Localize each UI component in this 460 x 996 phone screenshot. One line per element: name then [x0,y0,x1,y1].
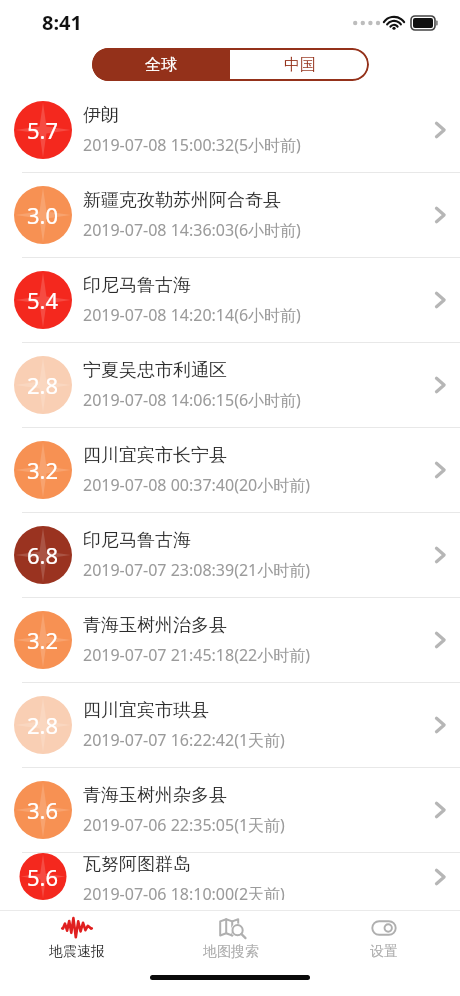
button[interactable]: 全球 [92,48,230,81]
staticText: 2.8 [27,370,59,400]
staticText: 青海玉树州杂多县 [83,784,227,807]
staticText: 2019-07-07 16:22:42(1天前) [83,729,285,751]
staticText: 2019-07-06 22:35:05(1天前) [83,814,285,836]
staticText: 2.8 [27,710,59,740]
staticText: 2019-07-08 14:36:03(6小时前) [83,219,301,241]
button[interactable]: 3.2 [0,428,460,512]
staticText: 设置 [370,943,398,961]
staticText: 宁夏吴忠市利通区 [83,359,227,382]
button[interactable]: 地震速报 [0,917,154,961]
staticText: 全球 [145,55,177,75]
staticText: 3.6 [27,795,59,825]
staticText: 青海玉树州治多县 [83,614,227,637]
staticText: 2019-07-08 00:37:40(20小时前) [83,474,311,496]
button[interactable]: 2.8 [0,683,460,767]
staticText: 瓦努阿图群岛 [83,853,191,876]
button[interactable]: 3.6 [0,768,460,852]
button[interactable]: 地图搜索 [154,917,307,961]
staticText: 地震速报 [49,943,105,961]
button[interactable]: 3.0 [0,173,460,257]
staticText: 四川宜宾市珙县 [83,699,209,722]
button[interactable]: 3.2 [0,598,460,682]
button[interactable]: 设置 [307,917,460,961]
staticText: 2019-07-08 14:06:15(6小时前) [83,389,301,411]
staticText: 伊朗 [83,104,119,127]
staticText: 印尼马鲁古海 [83,274,191,297]
button[interactable]: 5.7 [0,88,460,172]
staticText: 四川宜宾市长宁县 [83,444,227,467]
staticText: 2019-07-07 23:08:39(21小时前) [83,559,311,581]
staticText: 2019-07-07 21:45:18(22小时前) [83,644,311,666]
button[interactable]: 5.6 [0,853,460,900]
button[interactable]: 5.4 [0,258,460,342]
staticText: 2019-07-08 15:00:32(5小时前) [83,134,301,156]
staticText: 6.8 [27,540,59,570]
staticText: 3.2 [27,455,59,485]
staticText: 3.0 [27,200,59,230]
staticText: 中国 [284,55,316,75]
staticText: 3.2 [27,625,59,655]
staticText: 5.6 [27,862,59,892]
staticText: 5.7 [27,115,59,145]
staticText: 新疆克孜勒苏州阿合奇县 [83,189,281,212]
button[interactable]: 中国 [230,48,369,81]
staticText: 8:41 [42,9,82,36]
staticText: 5.4 [27,285,59,315]
staticText: 2019-07-06 18:10:00(2天前) [83,883,285,900]
staticText: 印尼马鲁古海 [83,529,191,552]
staticText: 地图搜索 [203,943,259,961]
staticText: 2019-07-08 14:20:14(6小时前) [83,304,301,326]
button[interactable]: 6.8 [0,513,460,597]
button[interactable]: 2.8 [0,343,460,427]
